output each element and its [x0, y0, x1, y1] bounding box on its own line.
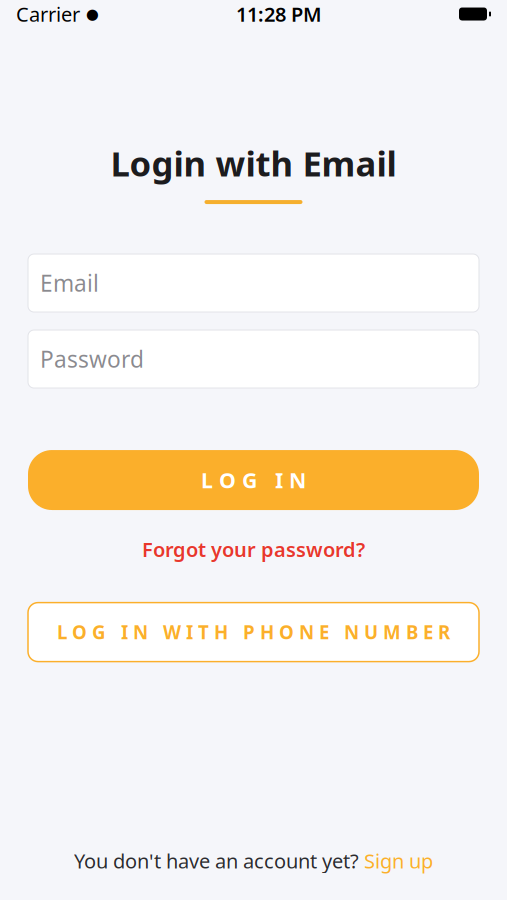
button[interactable]: You don't have an account yet?: [64, 841, 443, 880]
button[interactable]: L O G I N W I T H P H O N E N U M B E R: [0, 603, 507, 662]
button[interactable]: L O G I N: [0, 450, 507, 510]
staticText: You don't have an account yet?: [74, 847, 359, 874]
staticText: Password: [40, 344, 144, 374]
staticText: Login with Email: [110, 140, 396, 186]
staticText: Email: [40, 268, 99, 298]
button[interactable]: Forgot your password?: [130, 532, 377, 567]
staticText: L O G I N W I T H P H O N E N U M B E R: [57, 620, 450, 644]
staticText: Forgot your password?: [142, 536, 365, 563]
staticText: 11:28 PM: [236, 1, 322, 27]
staticText: ●: [86, 6, 99, 22]
staticText: Sign up: [364, 847, 433, 874]
staticText: Carrier: [16, 1, 80, 27]
staticText: L O G I N: [201, 466, 306, 494]
